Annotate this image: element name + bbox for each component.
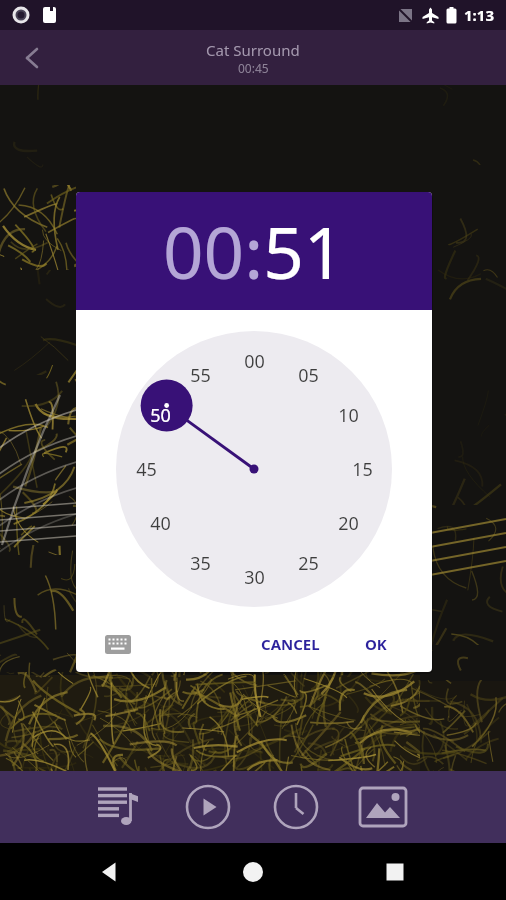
staticText: 25 [298, 551, 319, 576]
staticText: CANCEL [261, 634, 320, 654]
button[interactable]: CANCEL [261, 634, 320, 654]
button[interactable]: 10 [328, 402, 368, 428]
staticText: 00:51 [163, 203, 345, 300]
staticText: 40 [150, 511, 171, 536]
staticText: OK [365, 634, 387, 654]
button[interactable] [268, 779, 324, 835]
staticText: 50 [150, 403, 171, 428]
button[interactable]: 35 [180, 550, 220, 576]
staticText: 45 [136, 457, 157, 482]
staticText: 1:13 [464, 5, 494, 25]
button[interactable]: 40 [140, 510, 180, 536]
button[interactable]: 25 [288, 550, 328, 576]
staticText: Cat Surround [206, 40, 300, 60]
button[interactable]: 55 [180, 362, 220, 388]
button[interactable]: 45 [126, 456, 166, 482]
staticText: 00 [244, 349, 265, 374]
staticText: 20 [338, 511, 359, 536]
staticText: 00:45 [238, 60, 269, 76]
button[interactable]: 05 [288, 362, 328, 388]
button[interactable] [229, 848, 277, 896]
button[interactable]: 00 [234, 348, 274, 374]
staticText: 05 [298, 363, 319, 388]
button[interactable] [371, 848, 419, 896]
button[interactable]: 15 [342, 456, 382, 482]
button[interactable] [14, 40, 50, 76]
staticText: 15 [352, 457, 373, 482]
button[interactable] [86, 848, 134, 896]
button[interactable] [355, 779, 411, 835]
button[interactable]: OK [365, 634, 387, 654]
staticText: 10 [338, 403, 359, 428]
button[interactable]: 30 [234, 564, 274, 590]
button[interactable]: 20 [328, 510, 368, 536]
staticText: 30 [244, 565, 265, 590]
staticText: 55 [190, 363, 211, 388]
button[interactable]: 50 [140, 402, 180, 428]
staticText: 35 [190, 551, 211, 576]
button[interactable] [94, 779, 150, 835]
button[interactable] [180, 779, 236, 835]
button[interactable] [100, 627, 136, 661]
